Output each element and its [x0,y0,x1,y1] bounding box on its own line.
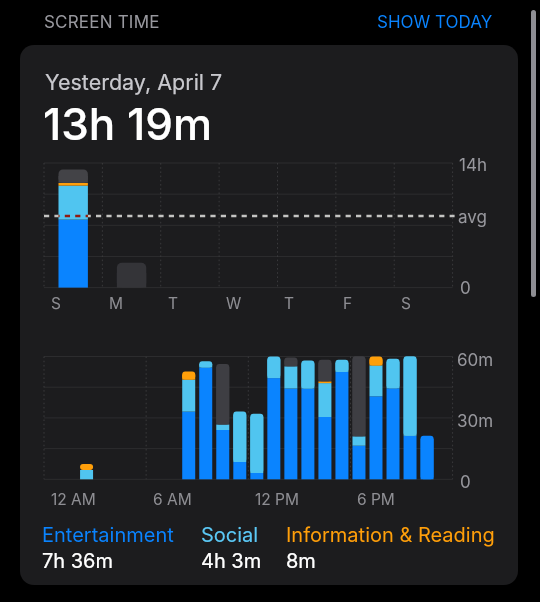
staticText: S [51,294,61,313]
staticText: 13h 19m [43,97,213,150]
staticText: 30m [457,411,494,432]
staticText: Yesterday, April 7 [45,69,223,95]
button[interactable]: Yesterday, April 7 [20,45,518,585]
staticText: avg [458,207,487,228]
staticText: 14h [459,155,487,176]
staticText: 0 [460,278,471,299]
staticText: S [401,294,411,313]
staticText: 8m [286,549,316,573]
staticText: Entertainment [42,523,174,547]
staticText: 60m [457,350,494,371]
staticText: Social [201,523,259,547]
staticText: 12 PM [255,490,300,509]
staticText: SCREEN TIME [44,12,160,33]
staticText: T [284,294,295,313]
staticText: 12 AM [51,490,96,509]
button[interactable]: SHOW TODAY [377,12,493,33]
staticText: 4h 3m [201,549,262,573]
staticText: 7h 36m [42,549,114,573]
staticText: SHOW TODAY [377,12,493,33]
staticText: 6 AM [153,490,192,509]
staticText: W [226,294,242,313]
staticText: 6 PM [357,490,395,509]
staticText: T [168,294,179,313]
staticText: 0 [460,472,471,493]
staticText: F [343,294,353,313]
staticText: M [109,294,124,313]
staticText: Information & Reading [286,523,495,547]
